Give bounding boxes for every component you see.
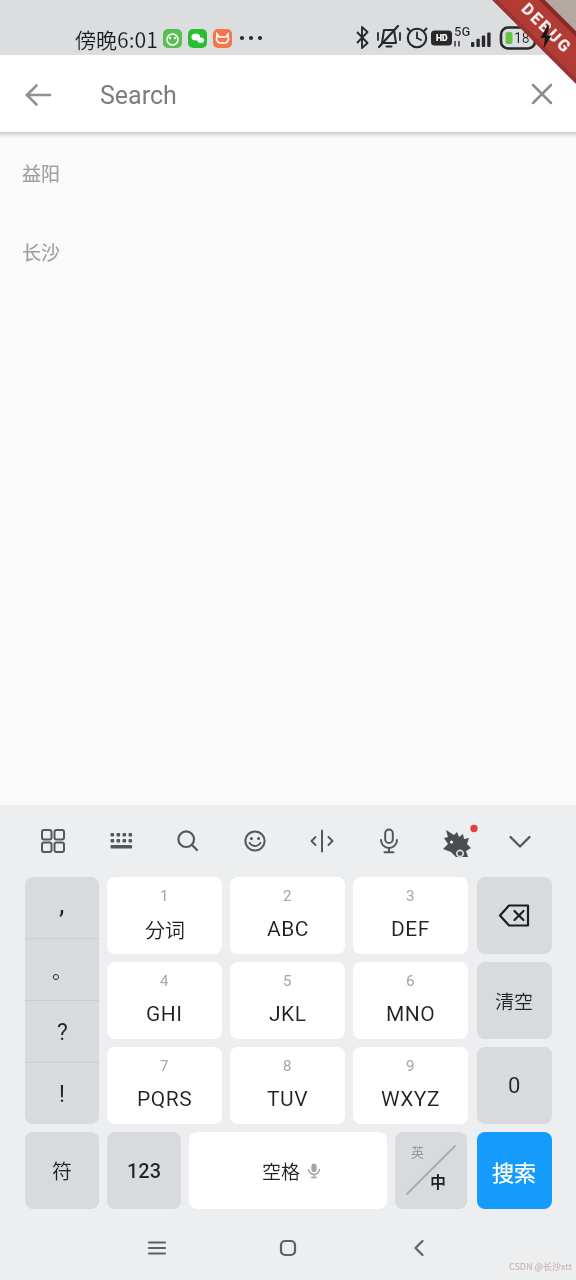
- staticText: ?: [57, 1019, 68, 1046]
- button[interactable]: 3: [353, 877, 468, 954]
- staticText: 5G: [454, 24, 471, 39]
- staticText: 3: [406, 887, 415, 905]
- button[interactable]: [20, 77, 56, 113]
- staticText: 分词: [145, 915, 185, 944]
- button[interactable]: 英: [395, 1132, 467, 1209]
- button[interactable]: 9: [353, 1047, 468, 1124]
- staticText: 6: [406, 972, 415, 990]
- button[interactable]: 长沙: [0, 222, 576, 282]
- staticText: 搜索: [492, 1155, 537, 1187]
- button[interactable]: 清空: [477, 962, 552, 1039]
- staticText: 123: [127, 1159, 162, 1182]
- staticText: 空格: [262, 1157, 301, 1185]
- staticText: 中: [430, 1169, 447, 1192]
- staticText: ABC: [267, 917, 309, 942]
- staticText: 益阳: [22, 159, 61, 187]
- staticText: 5: [283, 972, 292, 990]
- button[interactable]: [503, 824, 537, 858]
- button[interactable]: [524, 76, 560, 112]
- button[interactable]: [36, 824, 70, 858]
- staticText: WXYZ: [381, 1087, 440, 1112]
- staticText: 长沙: [22, 238, 61, 266]
- button[interactable]: [171, 824, 205, 858]
- button[interactable]: 4: [107, 962, 222, 1039]
- staticText: 2: [283, 887, 292, 905]
- staticText: 0: [508, 1073, 521, 1099]
- staticText: 8: [283, 1057, 292, 1075]
- button[interactable]: [139, 1230, 175, 1266]
- button[interactable]: 空格: [189, 1132, 387, 1209]
- button[interactable]: 2: [230, 877, 345, 954]
- staticText: 9: [406, 1057, 415, 1075]
- staticText: 符: [52, 1156, 72, 1185]
- staticText: Search: [100, 81, 177, 110]
- staticText: 18: [514, 30, 530, 46]
- staticText: ,: [59, 887, 65, 920]
- staticText: 。: [52, 956, 72, 985]
- button[interactable]: [238, 824, 272, 858]
- staticText: 1: [160, 887, 169, 905]
- button[interactable]: 6: [353, 962, 468, 1039]
- button[interactable]: 益阳: [0, 143, 576, 203]
- button[interactable]: [104, 824, 138, 858]
- staticText: 4: [160, 972, 169, 990]
- button[interactable]: [25, 877, 99, 1124]
- button[interactable]: 123: [107, 1132, 181, 1209]
- staticText: 傍晚6:01: [75, 24, 158, 54]
- staticText: MNO: [386, 1002, 436, 1027]
- button[interactable]: [270, 1230, 306, 1266]
- staticText: 英: [411, 1142, 425, 1161]
- button[interactable]: [305, 824, 339, 858]
- staticText: DEF: [391, 917, 430, 942]
- button[interactable]: 搜索: [477, 1132, 552, 1209]
- staticText: PQRS: [137, 1087, 193, 1112]
- staticText: GHI: [146, 1002, 183, 1027]
- staticText: JKL: [269, 1002, 307, 1027]
- staticText: TUV: [267, 1087, 309, 1112]
- button[interactable]: 符: [25, 1132, 99, 1209]
- button[interactable]: 5: [230, 962, 345, 1039]
- staticText: CSDN @长沙xtt: [509, 1260, 572, 1273]
- staticText: 7: [160, 1057, 169, 1075]
- button[interactable]: [477, 877, 552, 954]
- staticText: !: [59, 1081, 65, 1108]
- button[interactable]: 1: [107, 877, 222, 954]
- staticText: DEBUG: [518, 0, 576, 58]
- button[interactable]: 8: [230, 1047, 345, 1124]
- staticText: HD: [436, 33, 448, 43]
- button[interactable]: [439, 822, 477, 860]
- button[interactable]: [401, 1230, 437, 1266]
- button[interactable]: 0: [477, 1047, 552, 1124]
- staticText: 清空: [495, 987, 534, 1015]
- button[interactable]: [372, 824, 406, 858]
- button[interactable]: 7: [107, 1047, 222, 1124]
